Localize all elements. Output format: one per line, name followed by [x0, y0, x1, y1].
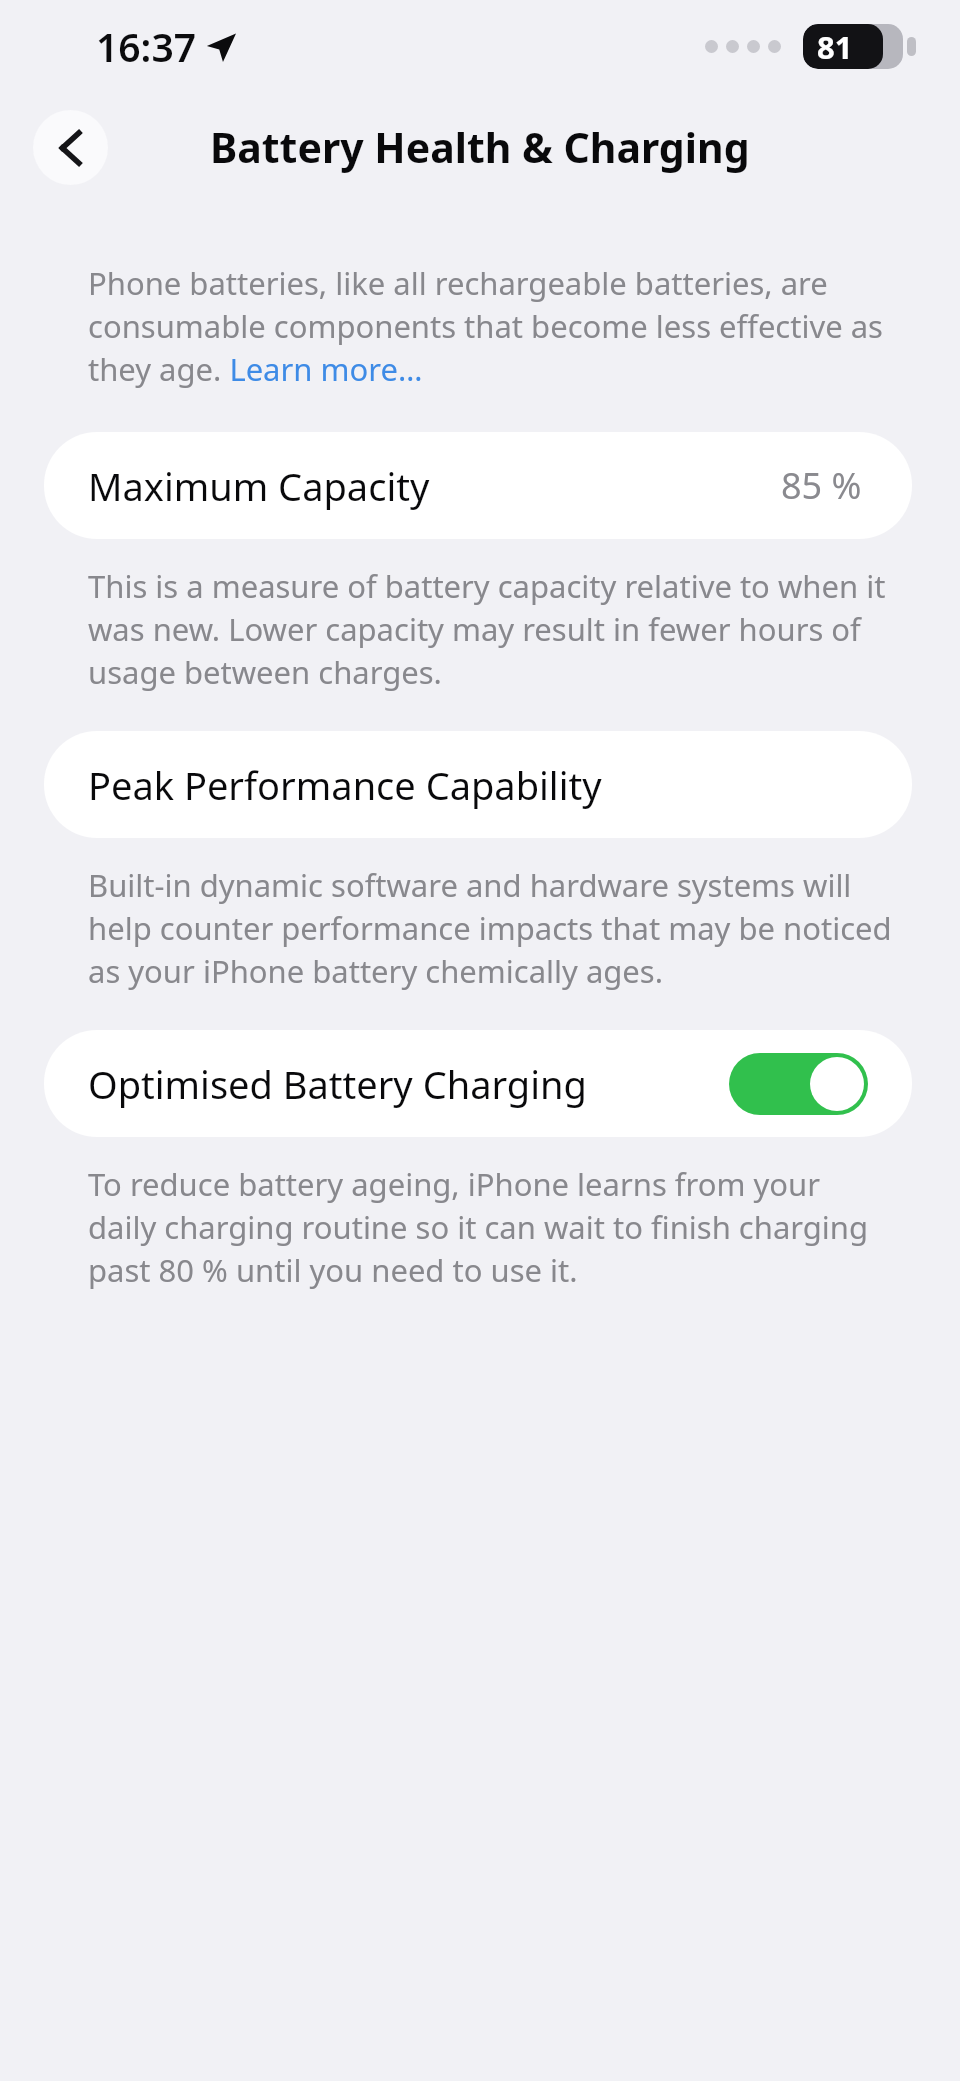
staticText: Peak Performance Capability [88, 759, 602, 811]
button[interactable]: Optimised Battery Charging [44, 1030, 912, 1137]
button[interactable]: Maximum Capacity [44, 432, 912, 539]
staticText: Phone batteries, like all rechargeable b… [88, 262, 900, 390]
button[interactable]: Back [33, 110, 108, 185]
staticText: Maximum Capacity [88, 460, 430, 512]
staticText: 16:37 [96, 20, 196, 73]
staticText: Optimised Battery Charging [88, 1058, 587, 1110]
staticText: Battery Health & Charging [210, 119, 750, 175]
staticText: 81 [817, 26, 853, 68]
button[interactable]: Peak Performance Capability [44, 731, 912, 838]
staticText: To reduce battery ageing, iPhone learns … [88, 1163, 894, 1291]
button[interactable]: Optimised Battery Charging toggle [729, 1053, 868, 1115]
staticText: This is a measure of battery capacity re… [88, 565, 894, 693]
staticText: Built-in dynamic software and hardware s… [88, 864, 894, 992]
staticText: 85 % [781, 461, 862, 510]
